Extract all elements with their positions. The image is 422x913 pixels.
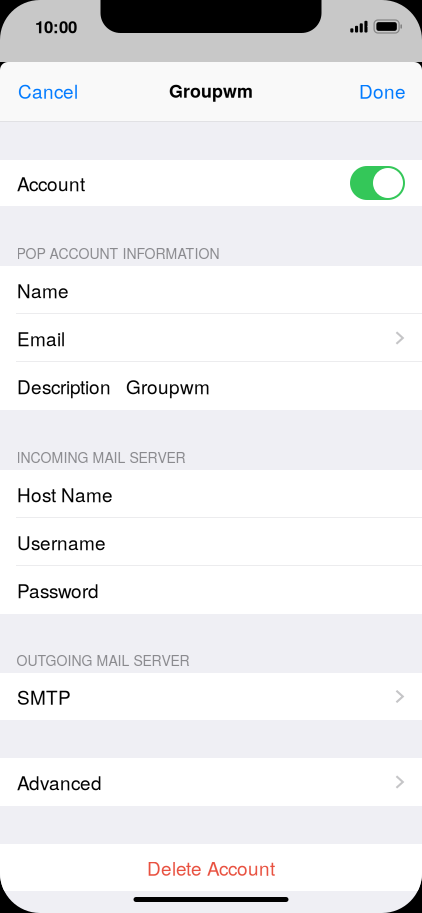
- button[interactable]: Done: [347, 68, 422, 112]
- staticText: Description: [17, 372, 111, 399]
- staticText: Password: [17, 576, 99, 603]
- button[interactable]: Username: [0, 518, 422, 566]
- button[interactable]: Password: [0, 566, 422, 614]
- staticText: Cancel: [18, 77, 78, 104]
- button[interactable]: Account: [0, 160, 422, 206]
- staticText: Name: [17, 276, 69, 303]
- staticText: Username: [17, 528, 106, 555]
- button[interactable]: Delete Account: [0, 844, 422, 891]
- button[interactable]: Advanced: [0, 758, 422, 806]
- button[interactable]: SMTP: [0, 673, 422, 720]
- button[interactable]: Host Name: [0, 470, 422, 518]
- staticText: Account: [17, 169, 85, 196]
- staticText: Done: [359, 77, 406, 104]
- staticText: 10:00: [35, 14, 77, 39]
- staticText: INCOMING MAIL SERVER: [16, 447, 185, 467]
- button[interactable]: Cancel: [0, 68, 90, 112]
- staticText: SMTP: [17, 683, 71, 710]
- staticText: Email: [17, 324, 65, 351]
- button[interactable]: Description: [0, 362, 422, 410]
- staticText: Groupwm: [126, 372, 210, 399]
- staticText: Delete Account: [147, 854, 275, 881]
- button[interactable]: Name: [0, 266, 422, 314]
- staticText: OUTGOING MAIL SERVER: [16, 650, 189, 670]
- button[interactable]: Email: [0, 314, 422, 362]
- staticText: Host Name: [17, 480, 113, 507]
- staticText: POP ACCOUNT INFORMATION: [16, 243, 219, 263]
- staticText: Groupwm: [169, 78, 253, 103]
- staticText: Advanced: [17, 768, 102, 795]
